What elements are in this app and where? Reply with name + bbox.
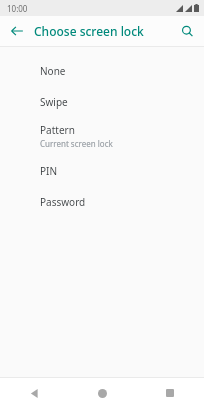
button[interactable]: Back [4,18,30,44]
button[interactable]: Home [68,378,136,408]
staticText: None [40,64,66,78]
button[interactable]: Search [175,19,199,43]
button[interactable]: Swipe [0,86,204,117]
button[interactable]: Recent apps [136,378,204,408]
staticText: Pattern [40,123,75,137]
staticText: Choose screen lock [34,23,175,39]
staticText: Swipe [40,95,68,109]
button[interactable]: PIN [0,155,204,186]
button[interactable]: Pattern [0,117,204,155]
staticText: Password [40,195,86,209]
button[interactable]: Back [0,378,68,408]
button[interactable]: None [0,55,204,86]
staticText: PIN [40,164,58,178]
button[interactable]: Password [0,186,204,217]
staticText: 10:00 [7,3,28,14]
staticText: Current screen lock [40,138,113,149]
